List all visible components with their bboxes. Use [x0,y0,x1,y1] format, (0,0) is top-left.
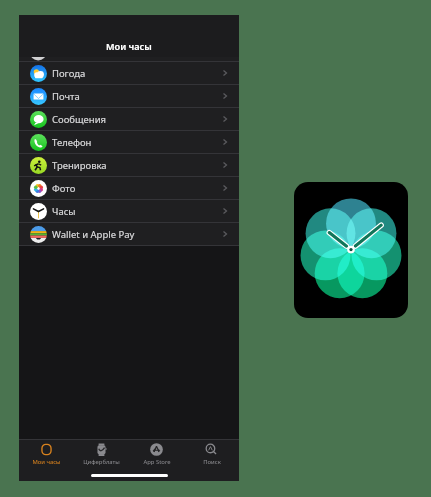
button[interactable]: Мои часы [19,443,74,466]
staticText: Фото [52,182,76,195]
other: Циферблаты [95,443,108,456]
button[interactable]: Wallet и Apple Pay [19,222,239,245]
button[interactable]: Тренировка [19,153,239,176]
button[interactable]: Фото [19,176,239,199]
staticText: Часы [52,205,76,218]
staticText: App Store [143,458,171,466]
button[interactable]: App Store [129,443,184,466]
button[interactable]: Погода [19,61,239,84]
button[interactable]: Почта [19,84,239,107]
staticText: Мои часы [106,40,152,53]
staticText: Сообщения [52,113,107,126]
other: Мои часы [40,443,53,456]
button[interactable]: Поиск [184,443,239,466]
staticText: Циферблаты [83,458,120,466]
button[interactable]: Часы [19,199,239,222]
staticText: Почта [52,90,80,103]
staticText: Поиск [203,458,221,466]
button[interactable]: Телефон [19,130,239,153]
staticText: Мои часы [32,458,61,466]
staticText: Телефон [52,136,92,149]
staticText: Wallet и Apple Pay [52,228,135,241]
other: Поиск [205,443,218,456]
button[interactable]: Сообщения [19,107,239,130]
button[interactable]: Циферблаты [74,443,129,466]
staticText: Погода [52,67,86,80]
staticText: Тренировка [52,159,107,172]
other: App Store [150,443,163,456]
